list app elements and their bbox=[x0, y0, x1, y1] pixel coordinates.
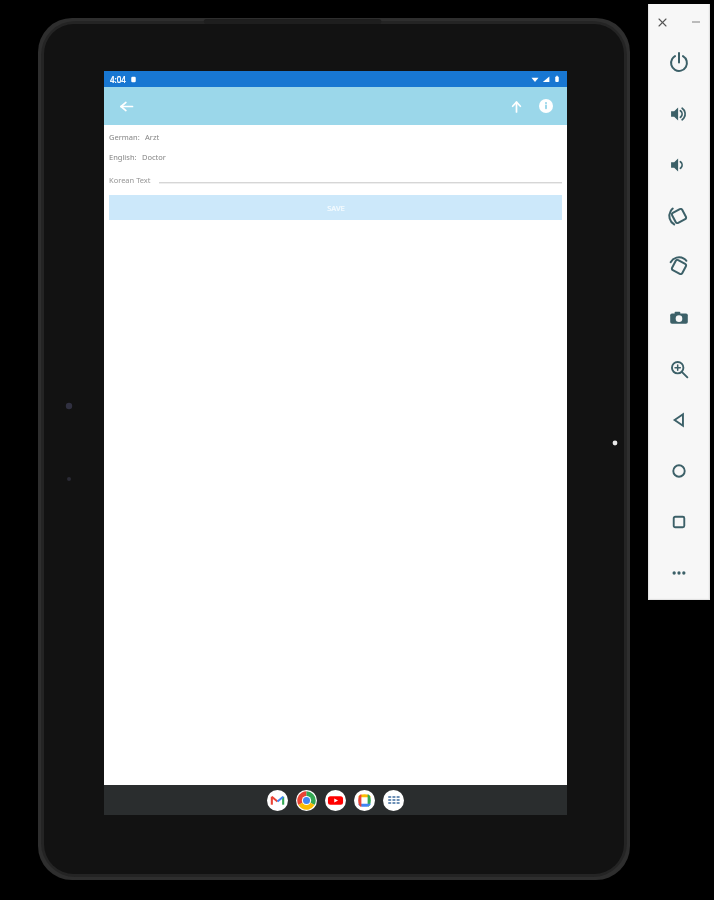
button[interactable]: Home bbox=[653, 445, 705, 496]
button[interactable]: All apps bbox=[383, 790, 404, 811]
button[interactable]: Power bbox=[653, 37, 705, 88]
button[interactable]: Chrome bbox=[296, 790, 317, 811]
button[interactable]: Minimize bbox=[688, 14, 704, 30]
staticText: English: bbox=[109, 152, 137, 162]
staticText: 4:04 bbox=[110, 74, 126, 85]
staticText: Doctor bbox=[142, 152, 166, 162]
button[interactable]: Zoom bbox=[653, 343, 705, 394]
button[interactable]: Rotate right bbox=[653, 241, 705, 292]
button[interactable]: Navigate up bbox=[112, 92, 140, 120]
staticText: Arzt bbox=[145, 132, 160, 142]
staticText: SAVE bbox=[327, 203, 345, 213]
button[interactable]: Take screenshot bbox=[653, 292, 705, 343]
staticText: Korean Text bbox=[109, 175, 151, 185]
button[interactable]: Volume down bbox=[653, 139, 705, 190]
button[interactable]: More bbox=[653, 547, 705, 598]
staticText: German: bbox=[109, 132, 140, 142]
button[interactable]: Back bbox=[653, 394, 705, 445]
button[interactable]: English: bbox=[109, 152, 562, 162]
button[interactable]: Info bbox=[531, 91, 561, 121]
button[interactable]: Gmail bbox=[267, 790, 288, 811]
button[interactable]: Close bbox=[654, 14, 670, 30]
button[interactable]: Overview bbox=[653, 496, 705, 547]
button[interactable]: Korean Text bbox=[109, 175, 562, 185]
button[interactable]: Share bbox=[501, 91, 531, 121]
button[interactable]: Rotate left bbox=[653, 190, 705, 241]
button[interactable]: Volume up bbox=[653, 88, 705, 139]
button[interactable]: YouTube bbox=[325, 790, 346, 811]
button[interactable]: German: bbox=[109, 132, 562, 142]
button[interactable]: Photos bbox=[354, 790, 375, 811]
